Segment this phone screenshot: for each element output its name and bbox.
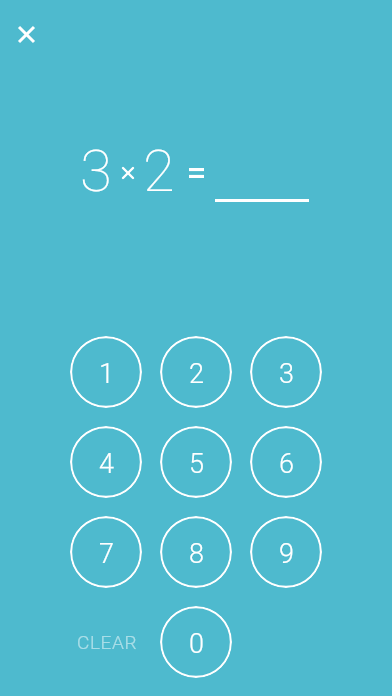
staticText: 1: [99, 358, 114, 390]
button[interactable]: 4: [70, 426, 142, 498]
staticText: 4: [99, 448, 114, 480]
button[interactable]: 0: [160, 606, 232, 678]
button[interactable]: 5: [160, 426, 232, 498]
button[interactable]: Close: [6, 14, 46, 54]
button[interactable]: 7: [70, 516, 142, 588]
staticText: 2: [189, 358, 204, 390]
staticText: 3: [279, 358, 294, 390]
button[interactable]: 2: [160, 336, 232, 408]
staticText: 7: [99, 538, 114, 570]
button[interactable]: 9: [250, 516, 322, 588]
button[interactable]: CLEAR: [70, 606, 142, 678]
staticText: 6: [279, 448, 294, 480]
staticText: 0: [189, 628, 204, 660]
staticText: 5: [189, 448, 204, 480]
staticText: 2: [143, 137, 175, 205]
button[interactable]: 3: [250, 336, 322, 408]
staticText: CLEAR: [77, 631, 138, 653]
button[interactable]: 1: [70, 336, 142, 408]
staticText: 3: [80, 137, 112, 205]
staticText: 9: [279, 538, 294, 570]
button[interactable]: 6: [250, 426, 322, 498]
staticText: 8: [189, 538, 204, 570]
button[interactable]: 8: [160, 516, 232, 588]
